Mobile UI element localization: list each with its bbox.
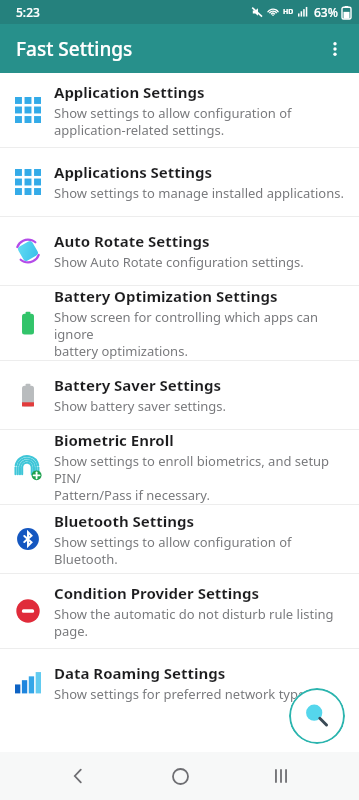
button[interactable]: Home [156,752,204,800]
button[interactable]: More options [311,25,359,73]
staticText: Condition Provider Settings [54,583,260,603]
staticText: HD [283,7,294,17]
button[interactable]: Recents [257,752,305,800]
staticText: Auto Rotate Settings [54,231,210,251]
staticText: Show screen for controlling which apps c… [54,308,347,360]
staticText: Biometric Enroll [54,430,174,450]
staticText: 5:23 [16,4,40,20]
staticText: Show settings to allow configuration of … [54,533,347,568]
staticText: 63% [314,4,338,20]
button[interactable]: Data Roaming Settings [0,649,359,717]
button[interactable]: Bluetooth Settings [0,505,359,573]
staticText: Show the automatic do not disturb rule l… [54,605,334,640]
staticText: Applications Settings [54,162,213,182]
staticText: Show settings to enroll biometrics, and … [54,452,347,504]
staticText: Application Settings [54,82,205,102]
staticText: Show settings to manage installed applic… [54,184,344,202]
button[interactable]: Application Settings [0,73,359,147]
staticText: Battery Saver Settings [54,375,221,395]
staticText: Show settings to allow configuration of … [54,104,292,139]
button[interactable]: Condition Provider Settings [0,574,359,648]
button[interactable]: Battery Saver Settings [0,361,359,429]
staticText: Show settings for preferred network type… [54,685,309,703]
button[interactable]: Search [289,688,345,744]
staticText: Fast Settings [16,36,133,62]
button[interactable]: Applications Settings [0,148,359,216]
staticText: Show battery saver settings. [54,397,227,415]
button[interactable]: Biometric Enroll [0,430,359,504]
staticText: Show Auto Rotate configuration settings. [54,253,304,271]
button[interactable]: Back [54,752,102,800]
button[interactable]: Battery Optimization Settings [0,286,359,360]
staticText: Data Roaming Settings [54,663,226,683]
staticText: Battery Optimization Settings [54,286,278,306]
staticText: Bluetooth Settings [54,511,195,531]
button[interactable]: Auto Rotate Settings [0,217,359,285]
